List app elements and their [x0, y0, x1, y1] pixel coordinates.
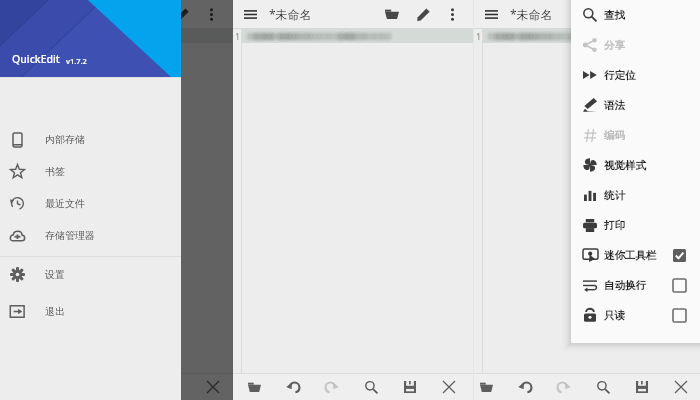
button[interactable]: 设置 — [0, 258, 181, 290]
button[interactable]: 退出 — [0, 295, 181, 327]
staticText: 迷你工具栏 — [604, 249, 657, 262]
staticText: 打印 — [604, 219, 625, 232]
staticText: 最近文件 — [45, 197, 85, 210]
button[interactable]: 语法 — [571, 90, 700, 120]
button[interactable]: Menu — [479, 2, 503, 26]
button[interactable]: Open — [473, 374, 499, 400]
staticText: 分享 — [604, 39, 625, 52]
staticText: 查找 — [604, 9, 625, 22]
staticText: *未命名 — [510, 6, 553, 22]
staticText: 编码 — [604, 129, 625, 142]
button[interactable]: 打印 — [571, 210, 700, 240]
staticText: *未命名 — [269, 6, 312, 22]
button[interactable]: Open — [241, 374, 267, 400]
staticText: 统计 — [604, 189, 625, 202]
button[interactable]: Close — [200, 374, 226, 400]
button[interactable]: Edit — [410, 1, 436, 27]
button[interactable]: 统计 — [571, 180, 700, 210]
button[interactable]: Close — [436, 374, 462, 400]
button[interactable]: Undo — [512, 374, 538, 400]
button[interactable]: Save — [397, 374, 423, 400]
staticText: 1 — [2, 30, 8, 42]
button[interactable]: Search — [590, 374, 616, 400]
button[interactable]: Open file — [605, 1, 631, 27]
button[interactable]: Close — [668, 374, 694, 400]
staticText: 1 — [235, 30, 241, 42]
button[interactable]: 书签 — [0, 155, 181, 187]
staticText: 退出 — [45, 305, 65, 318]
staticText: 1 — [476, 30, 482, 42]
staticText: 只读 — [604, 309, 625, 322]
button[interactable]: 编码 — [571, 120, 700, 150]
button[interactable]: 只读 — [571, 300, 700, 330]
staticText: QuickEdit — [12, 52, 60, 66]
button[interactable]: 行定位 — [571, 60, 700, 90]
button[interactable]: Search — [358, 374, 384, 400]
button[interactable]: Redo — [551, 374, 577, 400]
button[interactable]: Redo — [319, 374, 345, 400]
button[interactable]: Edit — [169, 1, 195, 27]
staticText: 内部存储 — [45, 133, 85, 146]
staticText: 自动换行 — [604, 279, 646, 292]
staticText: 设置 — [45, 268, 65, 281]
button[interactable]: More options — [441, 3, 463, 25]
button[interactable]: 视觉样式 — [571, 150, 700, 180]
button[interactable]: 存储管理器 — [0, 219, 181, 251]
button[interactable]: 迷你工具栏 — [571, 240, 700, 270]
staticText: 语法 — [604, 99, 625, 112]
button[interactable]: More options — [200, 3, 222, 25]
staticText: 行定位 — [604, 69, 636, 82]
staticText: 书签 — [45, 165, 65, 178]
button[interactable]: 查找 — [571, 0, 700, 30]
button[interactable]: Save — [629, 374, 655, 400]
button[interactable]: 分享 — [571, 30, 700, 60]
staticText: 视觉样式 — [604, 159, 646, 172]
button[interactable]: Menu — [238, 2, 262, 26]
staticText: 存储管理器 — [45, 229, 95, 242]
button[interactable]: Undo — [280, 374, 306, 400]
staticText: v1.7.2 — [66, 56, 87, 66]
button[interactable]: 最近文件 — [0, 187, 181, 219]
button[interactable]: 自动换行 — [571, 270, 700, 300]
button[interactable]: 内部存储 — [0, 123, 181, 155]
button[interactable]: Open file — [379, 1, 405, 27]
